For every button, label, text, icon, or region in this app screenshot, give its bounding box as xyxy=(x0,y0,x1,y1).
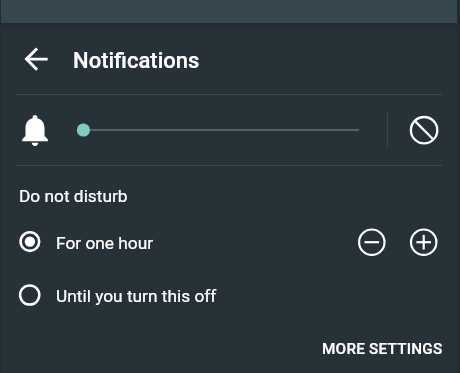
staticText: Notifications xyxy=(73,48,200,74)
button[interactable]: MORE SETTINGS xyxy=(309,332,451,364)
staticText: For one hour xyxy=(56,233,154,253)
button[interactable]: Until you turn this off xyxy=(0,271,345,319)
button[interactable]: Silence notifications xyxy=(404,110,444,150)
staticText: MORE SETTINGS xyxy=(322,340,443,358)
staticText: Until you turn this off xyxy=(56,286,217,306)
button[interactable]: Increase xyxy=(403,221,444,262)
staticText: Do not disturb xyxy=(19,186,128,206)
button[interactable]: Notification volume xyxy=(70,106,366,154)
button[interactable]: Decrease xyxy=(351,221,392,262)
button[interactable]: Navigate up xyxy=(12,35,60,83)
button[interactable]: For one hour xyxy=(0,218,345,266)
